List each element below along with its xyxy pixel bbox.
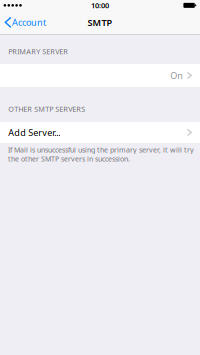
staticText: Add Server...	[8, 126, 60, 138]
staticText: 10:00	[91, 0, 109, 10]
staticText: OTHER SMTP SERVERS	[8, 104, 85, 114]
staticText: If Mail is unsuccessful using the primar…	[8, 145, 194, 164]
button[interactable]: On	[0, 64, 200, 87]
staticText: SMTP	[87, 16, 112, 29]
staticText: On	[170, 69, 183, 82]
staticText: Account	[12, 16, 46, 28]
button[interactable]: Add Server...	[0, 122, 200, 143]
button[interactable]: Account	[0, 13, 50, 31]
staticText: PRIMARY SERVER	[8, 46, 68, 56]
